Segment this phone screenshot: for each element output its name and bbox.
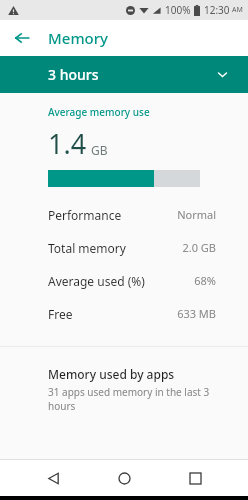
- staticText: 68%: [194, 273, 216, 288]
- button[interactable]: Average used (%): [0, 264, 248, 297]
- staticText: 2.0 GB: [182, 240, 216, 255]
- button[interactable]: Memory used by apps: [0, 364, 248, 419]
- staticText: Performance: [48, 207, 122, 223]
- button[interactable]: 3 hours: [0, 56, 248, 93]
- staticText: Average memory use: [48, 105, 150, 119]
- button[interactable]: Back: [35, 460, 71, 496]
- staticText: Memory used by apps: [48, 366, 175, 382]
- staticText: GB: [91, 142, 108, 158]
- staticText: 31 apps used memory in the last 3 hours: [48, 385, 232, 413]
- staticText: 100%: [165, 3, 191, 17]
- button[interactable]: Back: [8, 24, 36, 52]
- staticText: Average used (%): [48, 273, 145, 289]
- staticText: 12:30: [204, 3, 230, 17]
- button[interactable]: Recent apps: [177, 460, 213, 496]
- staticText: Normal: [177, 207, 216, 222]
- button[interactable]: Total memory: [0, 231, 248, 264]
- button[interactable]: Home: [106, 460, 142, 496]
- staticText: 3 hours: [48, 65, 99, 84]
- button[interactable]: Performance: [0, 198, 248, 231]
- staticText: AM: [232, 5, 243, 15]
- staticText: 633 MB: [177, 306, 216, 321]
- staticText: Memory: [48, 28, 109, 48]
- staticText: Free: [48, 306, 73, 322]
- staticText: 1.4: [48, 125, 87, 162]
- staticText: Total memory: [48, 240, 126, 256]
- button[interactable]: Free: [0, 297, 248, 330]
